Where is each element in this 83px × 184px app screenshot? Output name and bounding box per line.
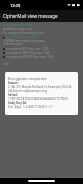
- button[interactable]: encrypted 3DES Key size: 168: [3, 51, 50, 55]
- staticText: 11BFC8C1A7ED3CAEE9DA48AE0C7C7B00: [8, 97, 68, 101]
- staticText: S/MIME encrypted message: [3, 39, 45, 43]
- staticText: 12:29: [10, 3, 21, 8]
- staticText: Encryption recipients: [8, 76, 47, 81]
- staticText: test simple message: [3, 23, 35, 27]
- button[interactable]: encrypted RC2 Key size: 128: [3, 47, 48, 51]
- staticText: encrypted RC2 Key size: 128: [6, 47, 48, 51]
- staticText: Submit again: [3, 42, 23, 46]
- button[interactable]: encrypted AES128 Key size: 128: [3, 55, 53, 59]
- staticText: Enc. Algo: 1.2.840.113549.1.1.1: [8, 105, 53, 109]
- staticText: Subj. Key Id:: [8, 101, 27, 105]
- staticText: Issuer:: [8, 81, 19, 85]
- staticText: text: [3, 62, 9, 66]
- staticText: Serial:: [8, 93, 18, 97]
- staticText: CipherMail view message: [3, 13, 58, 19]
- staticText: encrypted AES128 Key size: 128: [6, 55, 53, 59]
- staticText: AES128 Key size: 128: [6, 35, 37, 39]
- staticText: encrypted 3DES Key size: 168: [6, 51, 50, 55]
- staticText: C=NL,ST=Noord-Holland,O=Example,CN=CA Te…: [8, 85, 75, 89]
- staticText: bob@example.com: [3, 27, 32, 31]
- other: Home gesture bar: [28, 180, 55, 182]
- button[interactable]: Encryption recipients: [5, 72, 78, 115]
- button[interactable]: CipherMail view message: [0, 10, 83, 22]
- staticText: CA,Email=ca@example.org: [8, 89, 47, 93]
- staticText: To: recipient@example.com: [3, 31, 45, 35]
